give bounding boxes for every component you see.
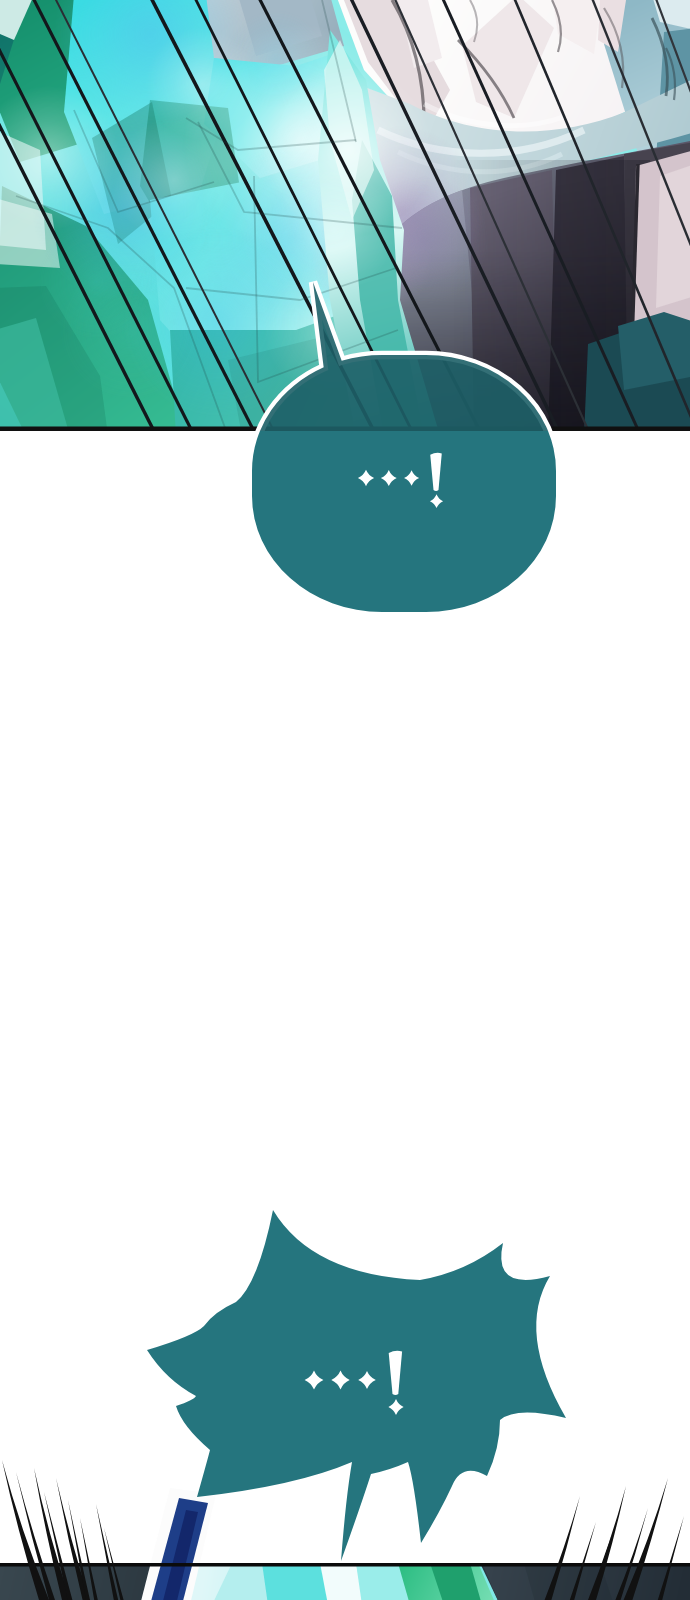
button[interactable] bbox=[0, 0, 690, 1600]
